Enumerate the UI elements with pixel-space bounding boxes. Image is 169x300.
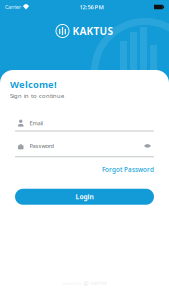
staticText: Sign in to continue xyxy=(10,92,64,100)
button[interactable]: Forgot Password xyxy=(102,165,154,174)
staticText: Login xyxy=(75,192,93,201)
staticText: powered by xyxy=(62,281,81,286)
staticText: Carrier xyxy=(5,3,21,11)
staticText: Forgot Password xyxy=(102,165,154,174)
staticText: 12:56 PM xyxy=(79,3,103,11)
staticText: KAKTUS xyxy=(90,281,106,286)
staticText: Password xyxy=(29,142,53,150)
staticText: Email xyxy=(29,119,42,127)
button[interactable]: Login xyxy=(15,189,154,205)
staticText: KAKTUS xyxy=(72,24,113,38)
staticText: Welcome! xyxy=(10,78,57,91)
